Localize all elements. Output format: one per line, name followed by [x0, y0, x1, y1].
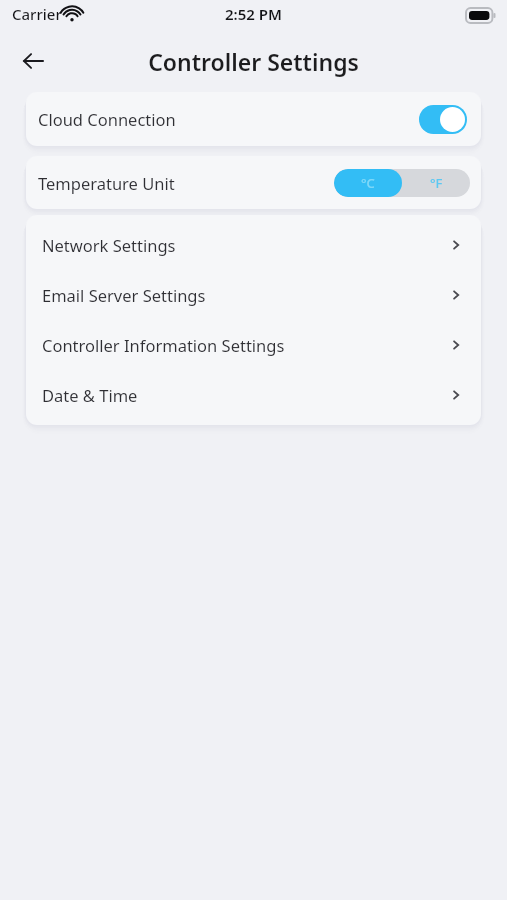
button[interactable]: Back: [10, 38, 56, 84]
staticText: Cloud Connection: [38, 108, 419, 130]
button[interactable]: Cloud Connection toggle: [419, 105, 467, 134]
staticText: °C: [361, 174, 375, 192]
staticText: Carrier: [12, 4, 62, 24]
staticText: Email Server Settings: [42, 284, 448, 306]
staticText: Date & Time: [42, 384, 448, 406]
button[interactable]: Temperature Unit: [26, 156, 481, 209]
button[interactable]: Cloud Connection: [26, 92, 481, 146]
button[interactable]: Network Settings: [26, 220, 481, 270]
button[interactable]: °C: [334, 169, 402, 197]
button[interactable]: Controller Information Settings: [26, 320, 481, 370]
button[interactable]: °F: [402, 169, 470, 197]
staticText: °F: [430, 174, 443, 192]
staticText: 2:52 PM: [225, 4, 282, 24]
staticText: Network Settings: [42, 234, 448, 256]
staticText: Controller Settings: [148, 46, 359, 77]
staticText: Controller Information Settings: [42, 334, 448, 356]
staticText: Temperature Unit: [38, 172, 334, 194]
button[interactable]: Email Server Settings: [26, 270, 481, 320]
button[interactable]: Date & Time: [26, 370, 481, 420]
